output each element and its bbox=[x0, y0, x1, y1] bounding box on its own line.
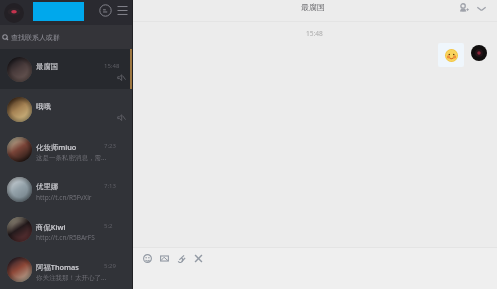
button[interactable]: 最腐国 bbox=[0, 49, 132, 89]
button[interactable]: More bbox=[475, 2, 488, 15]
staticText: 15:48 bbox=[104, 62, 120, 70]
staticText: 5:2 bbox=[104, 222, 113, 230]
staticText: 这是一条私密消息，需... bbox=[36, 153, 116, 162]
button[interactable]: Attach file bbox=[177, 254, 186, 263]
staticText: 优里娜 bbox=[36, 182, 102, 191]
staticText: 商侃Kiwi bbox=[36, 222, 102, 232]
button[interactable]: Image bbox=[160, 254, 169, 263]
staticText: 7:23 bbox=[104, 142, 116, 150]
staticText: 15:48 bbox=[306, 29, 323, 38]
button[interactable]: Add member bbox=[458, 3, 469, 14]
button[interactable]: Emoji bbox=[143, 254, 152, 263]
staticText: 哦哦 bbox=[36, 102, 102, 111]
button[interactable]: 阿福Thomas bbox=[0, 249, 132, 289]
button[interactable]: 优里娜 bbox=[0, 169, 132, 209]
staticText: 化妆师miuo bbox=[36, 142, 102, 152]
button[interactable]: 哦哦 bbox=[0, 89, 132, 129]
button[interactable]: 化妆师miuo bbox=[0, 129, 132, 169]
staticText: 5:29 bbox=[104, 262, 116, 270]
button[interactable]: Profile bbox=[4, 3, 24, 23]
button[interactable]: 查找联系人或群 bbox=[0, 25, 132, 49]
staticText: http://t.cn/R5FvXlr bbox=[36, 193, 116, 202]
staticText: 最腐国 bbox=[36, 62, 102, 71]
staticText: 最腐国 bbox=[301, 2, 325, 12]
button[interactable]: New chat bbox=[99, 4, 112, 17]
staticText: http://t.cn/R5BArFS bbox=[36, 233, 116, 242]
staticText: 查找联系人或群 bbox=[11, 33, 60, 42]
staticText: 阿福Thomas bbox=[36, 262, 102, 272]
staticText: 你关注我那！太开心了... bbox=[36, 273, 116, 282]
button[interactable]: Menu bbox=[117, 5, 128, 16]
staticText: 7:13 bbox=[104, 182, 116, 190]
button[interactable]: Close bbox=[194, 254, 203, 263]
button[interactable]: 商侃Kiwi bbox=[0, 209, 132, 249]
